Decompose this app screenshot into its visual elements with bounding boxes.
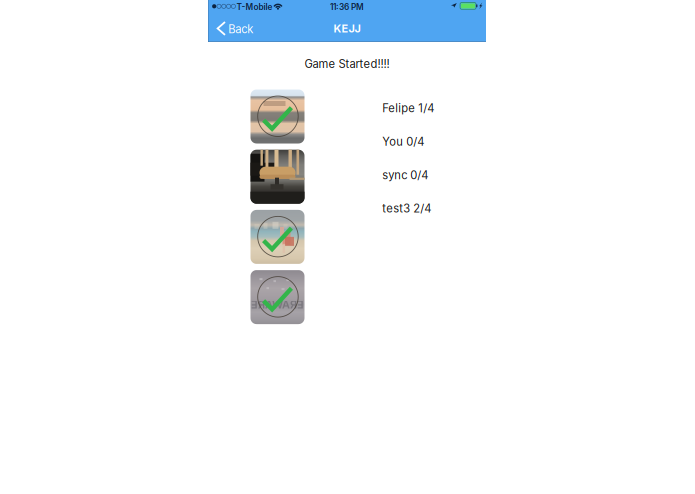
staticText: 11:36 PM: [330, 2, 364, 12]
staticText: sync 0/4: [382, 168, 428, 182]
staticText: ƎЯAWAЯƎ: [251, 298, 304, 311]
button[interactable]: Back: [208, 20, 264, 42]
button[interactable]: test3 photo: [250, 270, 304, 324]
staticText: Game Started!!!!: [304, 57, 389, 71]
staticText: T-Mobile: [236, 2, 272, 12]
staticText: Back: [228, 22, 253, 36]
button[interactable]: You photo: [250, 150, 304, 204]
staticText: KEJJ: [333, 22, 360, 35]
staticText: test3 2/4: [382, 202, 431, 215]
button[interactable]: Felipe photo: [250, 89, 304, 143]
button[interactable]: sync photo: [250, 210, 304, 264]
staticText: Felipe 1/4: [382, 101, 434, 115]
staticText: You 0/4: [382, 135, 424, 148]
